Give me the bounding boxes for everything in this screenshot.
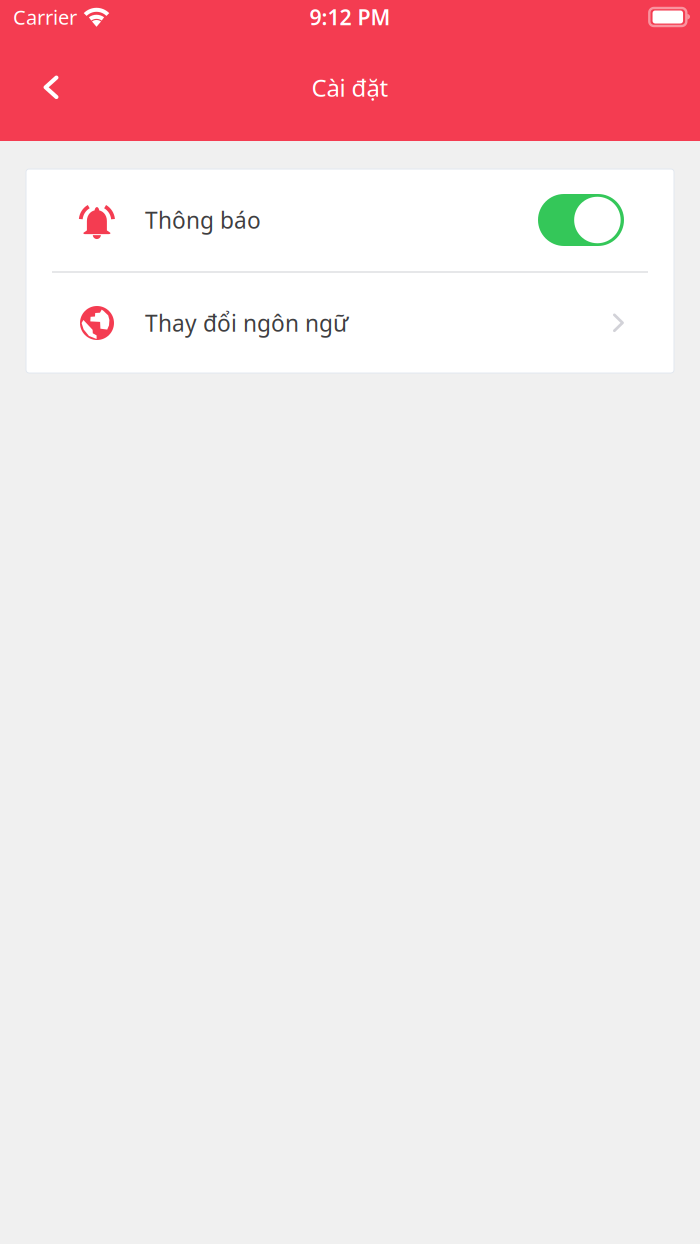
staticText: 9:12 PM [309, 3, 390, 31]
staticText: Cài đặt [311, 72, 388, 103]
staticText: Thông báo [145, 205, 261, 235]
button[interactable]: Thông báo [26, 169, 674, 271]
button[interactable]: Thay đổi ngôn ngữ [26, 273, 674, 373]
staticText: Carrier [13, 4, 77, 30]
button[interactable]: Back [24, 60, 78, 114]
staticText: Thay đổi ngôn ngữ [145, 308, 348, 338]
